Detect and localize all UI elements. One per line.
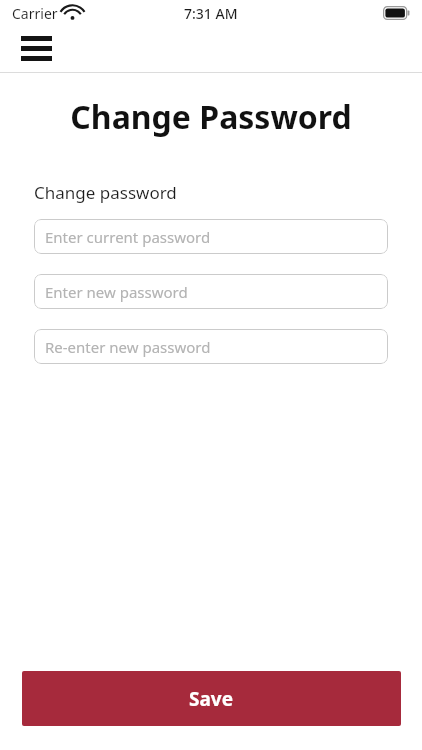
staticText: Enter current password <box>45 227 211 247</box>
staticText: Change Password <box>0 95 422 139</box>
staticText: Change password <box>34 181 177 204</box>
staticText: Enter new password <box>45 282 188 302</box>
staticText: 7:31 AM <box>184 4 238 23</box>
staticText: Re-enter new password <box>45 337 211 357</box>
staticText: Carrier <box>12 4 58 23</box>
button[interactable]: Enter current password <box>34 219 388 254</box>
button[interactable]: Enter new password <box>34 274 388 309</box>
button[interactable]: Re-enter new password <box>34 329 388 364</box>
staticText: Save <box>189 686 234 712</box>
button[interactable]: Open navigation menu <box>10 27 62 69</box>
button[interactable]: Save <box>22 671 401 726</box>
